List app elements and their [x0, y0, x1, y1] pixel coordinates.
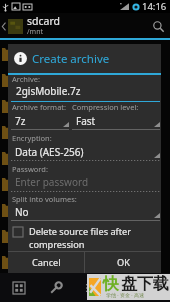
- button[interactable]: Menu: [74, 273, 108, 302]
- staticText: Archive:: [12, 74, 40, 84]
- button[interactable]: Fast: [72, 114, 160, 130]
- button[interactable]: OK: [85, 252, 161, 273]
- staticText: Enter password: [15, 175, 89, 189]
- staticText: Create archive: [32, 51, 110, 67]
- staticText: 7z: [15, 114, 26, 128]
- staticText: Delete source files after compression: [29, 225, 161, 251]
- staticText: 盘下载: [121, 274, 169, 294]
- staticText: No: [15, 205, 29, 219]
- button[interactable]: Delete source files after compression: [13, 225, 161, 251]
- staticText: Data (AES-256): [15, 145, 84, 159]
- staticText: sdcard: [27, 14, 61, 28]
- staticText: Split into volumes:: [12, 194, 77, 204]
- staticText: Cancel: [32, 256, 61, 269]
- button[interactable]: 7z: [11, 114, 69, 130]
- button[interactable]: Grid view: [0, 273, 38, 302]
- staticText: OK: [117, 256, 130, 269]
- staticText: /mnt: [27, 27, 44, 37]
- staticText: Archive format:: [12, 102, 67, 112]
- button[interactable]: Search: [146, 14, 170, 38]
- staticText: 学他 · 资金 · 高速: [106, 292, 144, 298]
- button[interactable]: Cancel: [8, 252, 84, 273]
- staticText: Compression level:: [72, 102, 139, 112]
- staticText: 14:16: [142, 0, 167, 13]
- button[interactable]: No: [11, 205, 160, 221]
- staticText: Fast: [76, 114, 96, 128]
- button[interactable]: Enter password: [11, 175, 160, 192]
- button[interactable]: Tools: [38, 273, 74, 302]
- button[interactable]: sdcard: [0, 14, 61, 38]
- staticText: Password:: [12, 164, 48, 174]
- staticText: 快: [103, 274, 119, 294]
- staticText: Encryption:: [12, 133, 52, 143]
- staticText: 2gisMobile.7z: [16, 84, 81, 98]
- button[interactable]: Data (AES-256): [11, 145, 160, 161]
